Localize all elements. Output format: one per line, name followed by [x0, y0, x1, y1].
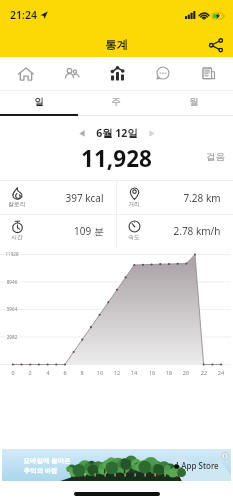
staticText: 10 — [94, 369, 106, 376]
button[interactable]: 일 — [0, 90, 77, 116]
staticText: 8 — [76, 369, 88, 376]
staticText: App Store — [181, 460, 219, 471]
staticText: 5964 — [5, 306, 19, 312]
button[interactable]: News — [188, 57, 228, 90]
button[interactable]: 거리 — [125, 181, 221, 214]
staticText: 6월 12일 — [96, 126, 138, 140]
staticText: 모바일에 불어온 — [23, 456, 71, 465]
staticText: 397 kcal — [65, 191, 104, 205]
staticText: 20 — [180, 369, 192, 376]
button[interactable]: 주 — [77, 90, 155, 116]
button[interactable]: 모바일에 불어온 — [2, 449, 231, 481]
button[interactable]: Chat — [142, 57, 182, 90]
button[interactable]: Statistics — [97, 57, 137, 90]
button[interactable]: 칼로리 — [8, 181, 104, 214]
staticText: 추억의 바람 — [23, 466, 58, 475]
button[interactable]: Next day — [143, 124, 161, 142]
staticText: 18 — [163, 369, 175, 376]
staticText: 22 — [198, 369, 210, 376]
button[interactable]: 시간 — [8, 215, 104, 247]
staticText: 4 — [42, 369, 54, 376]
staticText: 칼로리 — [8, 200, 26, 207]
staticText: 월 — [189, 96, 199, 108]
staticText: 거리 — [128, 200, 140, 207]
staticText: 6 — [59, 369, 71, 376]
staticText: 0 — [7, 369, 19, 376]
staticText: 2.78 km/h — [173, 224, 221, 238]
staticText: 14 — [128, 369, 140, 376]
staticText: 21:24 — [10, 8, 37, 22]
button[interactable]: 속도 — [125, 215, 221, 247]
staticText: 16 — [146, 369, 158, 376]
button[interactable]: Friends — [51, 57, 91, 90]
staticText: 24 — [215, 369, 227, 376]
staticText: 11928 — [5, 251, 19, 257]
staticText: 주 — [111, 96, 121, 108]
staticText: 7.28 km — [183, 191, 221, 205]
button[interactable]: Previous day — [73, 124, 91, 142]
button[interactable]: Share — [204, 33, 228, 57]
staticText: 시간 — [11, 233, 23, 240]
staticText: 통계 — [105, 38, 128, 52]
staticText: 걸음 — [206, 151, 225, 163]
button[interactable]: 월 — [155, 90, 233, 116]
button[interactable]: Home — [6, 57, 46, 90]
staticText: 11,928 — [81, 143, 152, 172]
button[interactable]: Ad info — [221, 452, 229, 460]
staticText: 12 — [111, 369, 123, 376]
staticText: i — [224, 453, 226, 459]
staticText: 2 — [24, 369, 36, 376]
staticText: 109 분 — [74, 224, 104, 238]
staticText: 2982 — [5, 334, 19, 340]
staticText: 속도 — [128, 233, 140, 240]
staticText: 일 — [34, 96, 44, 108]
staticText: 8946 — [5, 279, 19, 285]
